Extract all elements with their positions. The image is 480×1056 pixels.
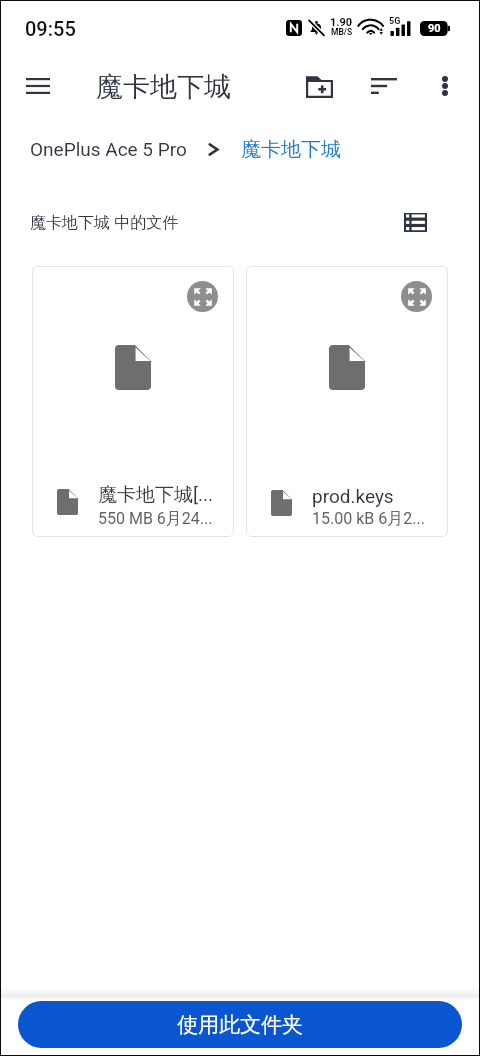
button[interactable]: 魔卡地下城	[241, 137, 341, 162]
staticText: 1.90	[330, 16, 353, 29]
button[interactable]: Expand	[187, 281, 218, 312]
button[interactable]: More options	[421, 62, 469, 110]
button[interactable]: New folder	[295, 62, 343, 110]
button[interactable]: Expand	[32, 266, 234, 537]
button[interactable]: Sort	[360, 62, 408, 110]
staticText: 魔卡地下城[...	[98, 483, 214, 507]
button[interactable]: Expand	[246, 266, 448, 537]
staticText: 魔卡地下城 中的文件	[30, 211, 179, 233]
button[interactable]: 使用此文件夹	[18, 1001, 462, 1048]
staticText: 90	[428, 22, 441, 35]
staticText: 09:55	[25, 17, 76, 40]
button[interactable]: Menu	[14, 62, 62, 110]
staticText: 15.00 kB 6月2...	[312, 509, 425, 529]
button[interactable]: Expand	[401, 281, 432, 312]
button[interactable]: OnePlus Ace 5 Pro	[30, 138, 187, 160]
staticText: MB/S	[331, 27, 353, 37]
staticText: 魔卡地下城	[96, 70, 231, 104]
staticText: 5G	[389, 16, 401, 27]
button[interactable]: List view	[396, 203, 434, 241]
staticText: prod.keys	[312, 485, 394, 507]
staticText: 550 MB 6月24...	[98, 509, 213, 529]
staticText: 使用此文件夹	[177, 1012, 303, 1038]
